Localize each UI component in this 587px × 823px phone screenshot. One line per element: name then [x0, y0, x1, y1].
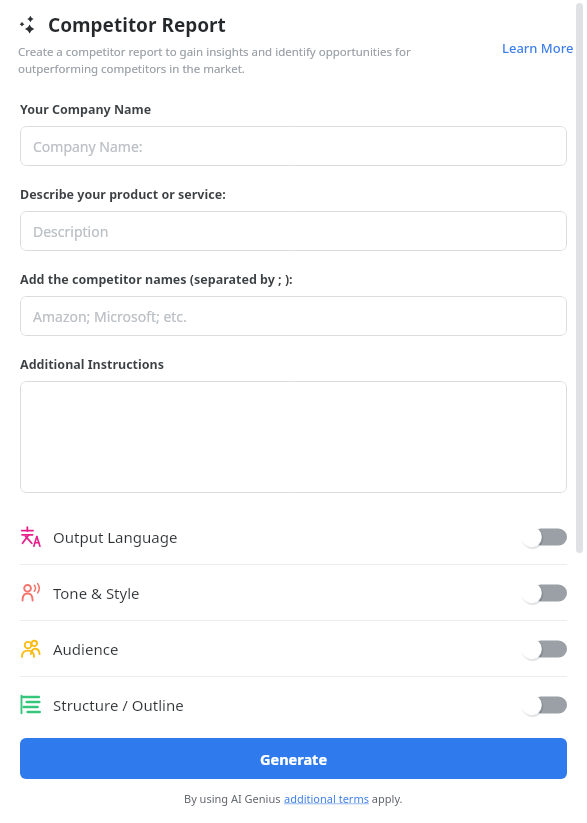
button[interactable]: Audience: [20, 621, 567, 676]
staticText: Your Company Name: [20, 101, 152, 118]
staticText: Generate: [260, 749, 328, 769]
staticText: Describe your product or service:: [20, 186, 226, 203]
button[interactable]: Amazon; Microsoft; etc.: [20, 296, 567, 336]
staticText: Add the competitor names (separated by ;…: [20, 271, 293, 288]
staticText: Description: [33, 222, 109, 241]
staticText: apply.: [369, 791, 403, 806]
button[interactable]: Toggle option: [521, 524, 567, 550]
button[interactable]: Learn More: [499, 36, 577, 60]
button[interactable]: Toggle option: [521, 636, 567, 662]
staticText: Structure / Outline: [53, 695, 184, 715]
button[interactable]: additional terms: [284, 791, 369, 806]
staticText: Company Name:: [33, 137, 143, 156]
button[interactable]: Tone & Style: [20, 565, 567, 620]
button[interactable]: Company Name:: [20, 126, 567, 166]
staticText: Audience: [53, 639, 119, 659]
staticText: Output Language: [53, 527, 178, 547]
button[interactable]: Toggle option: [521, 580, 567, 606]
button[interactable]: Output Language: [20, 509, 567, 564]
button[interactable]: Description: [20, 211, 567, 251]
staticText: Learn More: [502, 39, 574, 57]
staticText: additional terms: [284, 791, 369, 806]
staticText: Amazon; Microsoft; etc.: [33, 307, 187, 326]
button[interactable]: Generate: [20, 738, 567, 779]
staticText: Create a competitor report to gain insig…: [18, 44, 473, 76]
staticText: Additional Instructions: [20, 356, 164, 373]
button[interactable]: Toggle option: [521, 692, 567, 718]
staticText: By using AI Genius: [184, 791, 284, 806]
staticText: Tone & Style: [53, 583, 140, 603]
staticText: Competitor Report: [48, 12, 226, 38]
button[interactable]: [20, 381, 567, 493]
button[interactable]: Structure / Outline: [20, 677, 567, 732]
